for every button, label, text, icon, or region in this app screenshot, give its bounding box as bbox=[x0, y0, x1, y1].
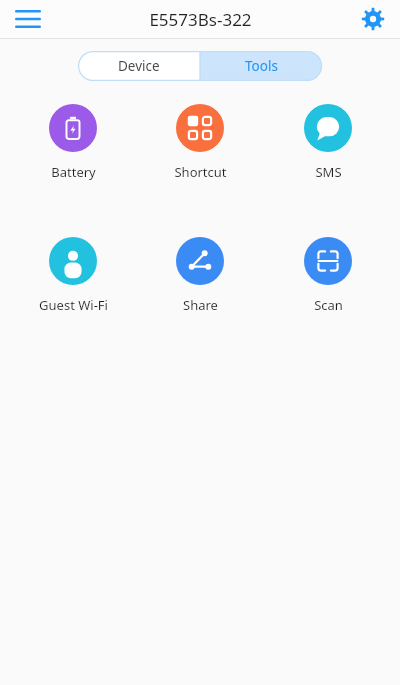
staticText: Guest Wi-Fi bbox=[39, 296, 108, 314]
staticText: Share bbox=[183, 296, 218, 314]
button[interactable]: Share bbox=[145, 237, 255, 314]
button[interactable]: SMS bbox=[273, 104, 383, 181]
button[interactable]: Device bbox=[78, 51, 200, 81]
staticText: E5573Bs-322 bbox=[149, 8, 252, 31]
staticText: Tools bbox=[245, 57, 278, 75]
button[interactable]: Shortcut bbox=[145, 104, 255, 181]
button[interactable]: Settings bbox=[352, 0, 394, 38]
staticText: Shortcut bbox=[174, 163, 227, 181]
button[interactable]: Tools bbox=[200, 51, 322, 81]
staticText: Battery bbox=[51, 163, 96, 181]
staticText: Scan bbox=[314, 296, 343, 314]
button[interactable]: Guest Wi-Fi bbox=[18, 237, 128, 314]
staticText: Device bbox=[118, 57, 160, 75]
button[interactable]: Battery bbox=[18, 104, 128, 181]
staticText: SMS bbox=[315, 163, 342, 181]
button[interactable]: Scan bbox=[273, 237, 383, 314]
button[interactable]: Menu bbox=[6, 0, 50, 38]
